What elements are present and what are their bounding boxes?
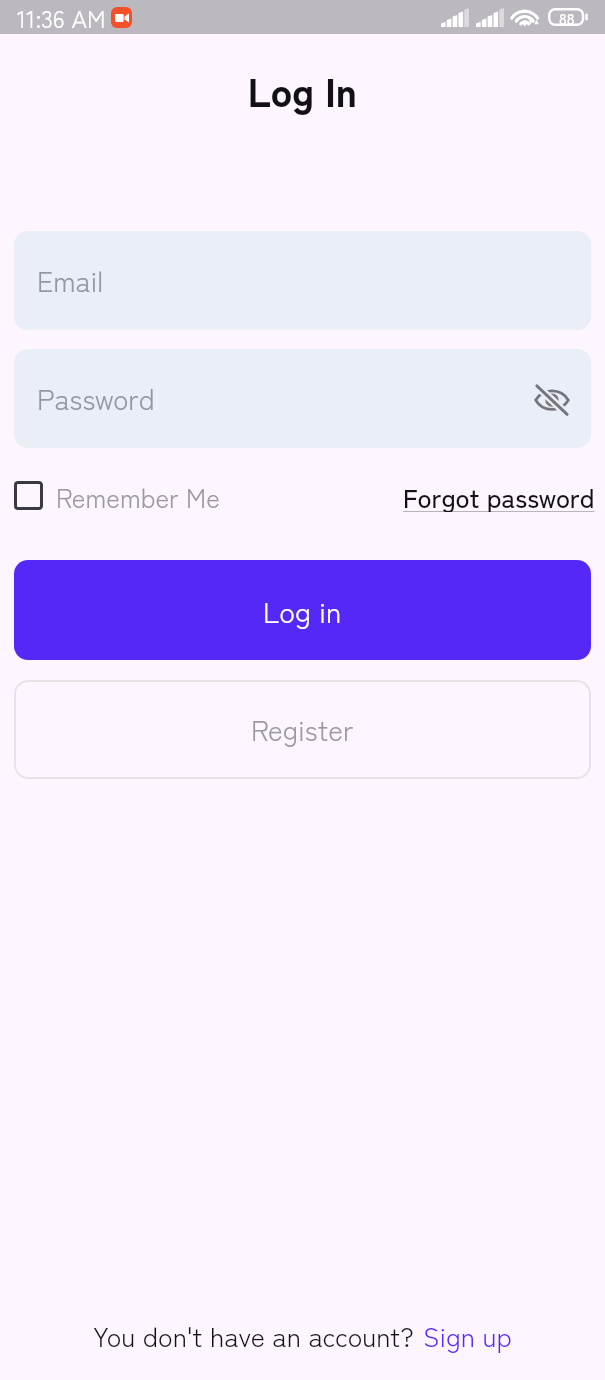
staticText: Password (37, 378, 155, 419)
button[interactable]: Password (14, 349, 591, 448)
staticText: Email (37, 260, 104, 301)
button[interactable]: Sign up (423, 1316, 512, 1355)
staticText: You don't have an account? (93, 1316, 414, 1355)
button[interactable]: Toggle password visibility (526, 373, 578, 425)
staticText: 11:36 AM (17, 0, 106, 34)
button[interactable]: Register (14, 680, 591, 779)
staticText: Log In (0, 61, 605, 119)
staticText: Forgot password (403, 478, 595, 512)
button[interactable]: Forgot password (389, 472, 605, 518)
button[interactable]: Email (14, 231, 591, 330)
staticText: Log in (263, 589, 342, 631)
staticText: Register (251, 709, 354, 750)
button[interactable]: Remember Me (0, 472, 234, 518)
button[interactable]: Log in (14, 560, 591, 660)
staticText: Remember Me (56, 478, 220, 512)
staticText: 88 (559, 8, 575, 26)
